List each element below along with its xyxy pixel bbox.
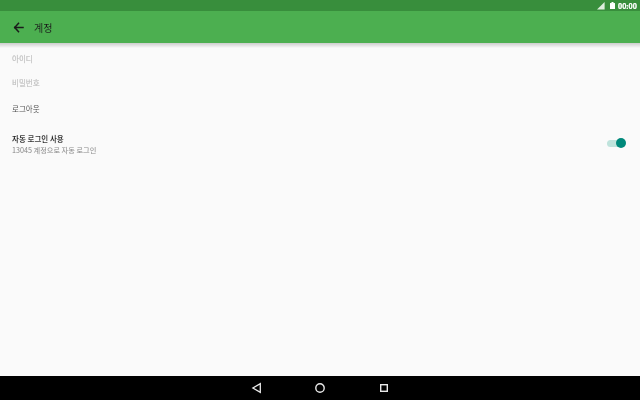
button[interactable]: 비밀번호 xyxy=(0,73,640,91)
button[interactable] xyxy=(288,376,352,400)
staticText: 비밀번호 xyxy=(12,77,40,88)
staticText: 13045 계정으로 자동 로그인 xyxy=(12,145,97,155)
button[interactable] xyxy=(607,137,626,149)
staticText: 00:00 xyxy=(618,1,637,11)
staticText: 아이디 xyxy=(12,53,33,64)
button[interactable] xyxy=(5,11,32,43)
button[interactable] xyxy=(352,376,416,400)
staticText: 계정 xyxy=(34,20,53,34)
button[interactable] xyxy=(224,376,288,400)
button[interactable]: 아이디 xyxy=(0,43,640,73)
button[interactable]: 로그아웃 xyxy=(0,91,640,126)
staticText: 자동 로그인 사용 xyxy=(12,133,64,144)
button[interactable]: 자동 로그인 사용 xyxy=(0,126,640,166)
staticText: 로그아웃 xyxy=(12,103,40,114)
